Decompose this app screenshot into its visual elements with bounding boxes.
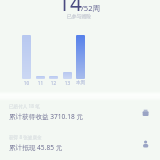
staticText: 12 [44, 80, 63, 86]
staticText: 13 [58, 80, 77, 86]
other: Members [142, 140, 150, 148]
staticText: /52周 [81, 3, 101, 13]
staticText: 10 [17, 80, 36, 86]
staticText: 累计抵现 45.85 元 [9, 143, 63, 152]
staticText: 本周 [71, 80, 90, 86]
staticText: 累计获得收益 3710.18 元 [9, 112, 83, 121]
button[interactable]: 获得 8 张健康金 [0, 132, 160, 158]
staticText: 获得 8 张健康金 [9, 134, 42, 140]
button[interactable]: 已赔付人 18 笔 [0, 101, 160, 127]
staticText: 已参与赠险 [67, 13, 91, 19]
other: Earnings [142, 109, 150, 117]
staticText: 14 [58, 0, 83, 18]
staticText: 11 [31, 80, 50, 86]
staticText: 已赔付人 18 笔 [9, 103, 40, 109]
